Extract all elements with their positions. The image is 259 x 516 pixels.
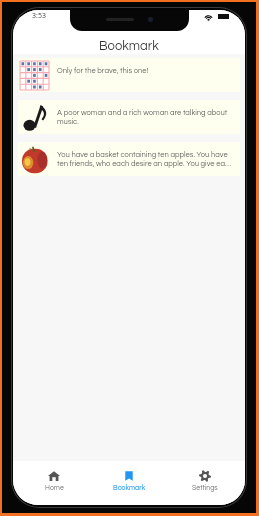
staticText: Home [45,484,64,491]
other: Settings [199,471,211,481]
button[interactable]: A poor woman and a rich woman are talkin… [18,100,240,134]
staticText: Bookmark [113,484,146,491]
staticText: Bookmark [99,39,159,52]
staticText: 3:53 [32,11,46,21]
other: Bookmark [123,471,135,481]
staticText: A poor woman and a rich woman are talkin… [57,109,235,126]
button[interactable]: You have a basket containing ten apples.… [18,142,240,176]
staticText: Only for the brave, this one! [57,67,149,75]
button[interactable]: Only for the brave, this one! [18,58,240,92]
staticText: You have a basket containing ten apples.… [57,151,235,168]
button[interactable]: Bookmark [94,469,164,497]
button[interactable]: Settings [170,469,240,497]
staticText: Settings [192,484,218,491]
button[interactable]: Home [19,469,89,497]
other: Home [48,471,60,481]
